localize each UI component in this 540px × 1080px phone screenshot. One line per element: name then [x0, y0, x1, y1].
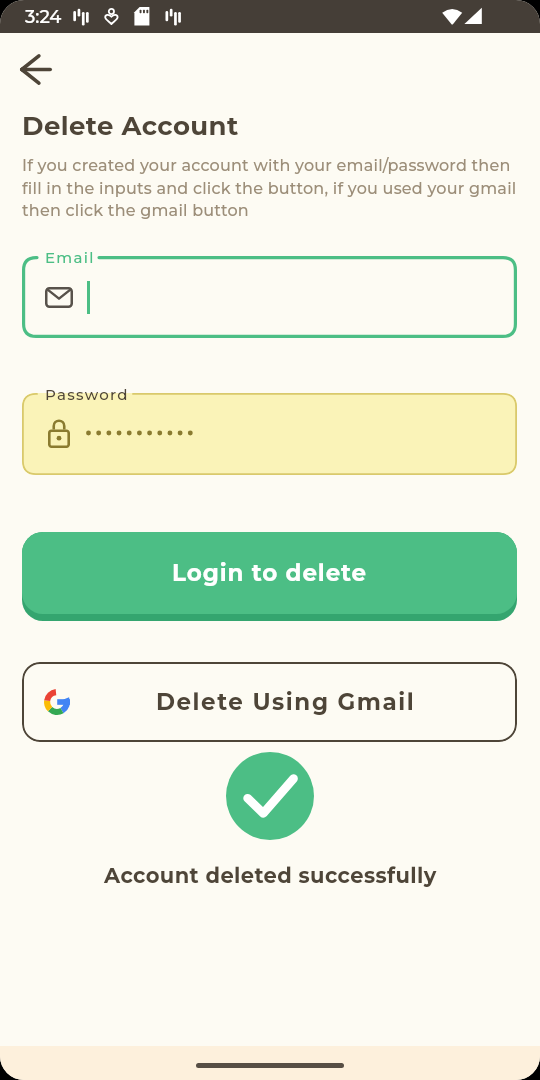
button[interactable]: Back: [11, 44, 61, 94]
button[interactable]: Login to delete: [22, 532, 517, 614]
staticText: Delete Account: [22, 110, 239, 142]
staticText: Email: [45, 248, 95, 266]
staticText: If you created your account with your em…: [22, 156, 519, 220]
button[interactable]: [22, 393, 517, 475]
staticText: Delete Using Gmail: [156, 688, 416, 716]
staticText: 3:24: [25, 6, 62, 28]
staticText: Password: [45, 385, 129, 403]
button[interactable]: [22, 256, 517, 338]
staticText: Login to delete: [172, 559, 367, 587]
staticText: Account deleted successfully: [104, 863, 437, 889]
button[interactable]: Delete Using Gmail: [22, 662, 517, 742]
